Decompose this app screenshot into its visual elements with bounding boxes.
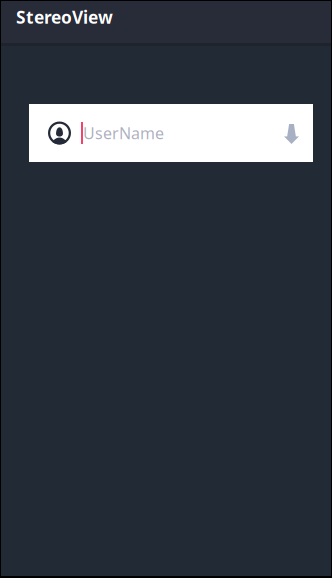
button[interactable]: UserName (29, 104, 313, 162)
staticText: StereoView (16, 5, 113, 28)
staticText: UserName (83, 122, 164, 144)
